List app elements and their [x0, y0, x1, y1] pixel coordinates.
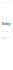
- staticText: Today: [2, 22, 11, 26]
- staticText: Afternoon: [2, 37, 9, 39]
- staticText: 9:41: [1, 1, 4, 3]
- staticText: Morning: [2, 30, 8, 32]
